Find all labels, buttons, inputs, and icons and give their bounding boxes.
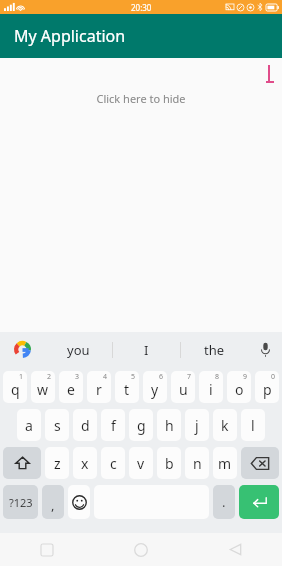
staticText: w [37, 380, 49, 399]
staticText: x [81, 454, 89, 473]
staticText: 4 [103, 372, 108, 382]
staticText: h [165, 416, 174, 435]
staticText: n [193, 454, 202, 473]
button[interactable]: s [45, 409, 69, 441]
staticText: v [137, 454, 145, 473]
staticText: you [67, 341, 90, 359]
staticText: ?123 [9, 495, 33, 510]
staticText: 3 [75, 372, 80, 382]
button[interactable]: g [129, 409, 153, 441]
button[interactable]: j [185, 409, 209, 441]
staticText: 0 [271, 372, 276, 382]
staticText: o [235, 380, 244, 399]
staticText: q [11, 380, 20, 399]
button[interactable]: x [73, 447, 97, 479]
staticText: 9 [243, 372, 248, 382]
button[interactable]: p [255, 371, 279, 403]
staticText: , [51, 496, 55, 514]
staticText: s [54, 416, 61, 435]
button[interactable]: b [157, 447, 181, 479]
button[interactable]: z [45, 447, 69, 479]
button[interactable]: c [101, 447, 125, 479]
staticText: 8 [215, 372, 220, 382]
staticText: My Application [14, 25, 126, 47]
staticText: 6 [159, 372, 164, 382]
button[interactable]: the [181, 332, 248, 367]
staticText: z [54, 454, 61, 473]
button[interactable]: l [241, 409, 265, 441]
staticText: k [221, 416, 229, 435]
button[interactable]: Click here to hide [96, 91, 186, 106]
staticText: e [67, 380, 75, 399]
staticText: 5 [131, 372, 136, 382]
button[interactable]: i [199, 371, 223, 403]
button[interactable]: , [42, 485, 64, 519]
staticText: p [263, 380, 272, 399]
staticText: d [81, 416, 90, 435]
staticText: f [111, 416, 116, 435]
staticText: 7 [187, 372, 192, 382]
staticText: a [25, 416, 33, 435]
staticText: j [195, 416, 199, 435]
button[interactable]: Shift [3, 447, 41, 479]
button[interactable]: Google [0, 332, 44, 367]
button[interactable]: a [17, 409, 41, 441]
button[interactable]: h [157, 409, 181, 441]
button[interactable]: n [185, 447, 209, 479]
button[interactable]: q [3, 371, 27, 403]
staticText: b [165, 454, 174, 473]
button[interactable]: Enter [239, 485, 279, 519]
staticText: c [110, 454, 117, 473]
button[interactable]: e [59, 371, 83, 403]
button[interactable]: Emoji [68, 485, 90, 519]
button[interactable]: r [87, 371, 111, 403]
button[interactable]: Home [94, 533, 188, 566]
staticText: y [151, 380, 159, 399]
staticText: u [179, 380, 188, 399]
staticText: g [137, 416, 146, 435]
button[interactable]: w [31, 371, 55, 403]
button[interactable]: Backspace [241, 447, 279, 479]
button[interactable]: you [44, 332, 112, 367]
staticText: r [96, 380, 102, 399]
button[interactable]: d [73, 409, 97, 441]
staticText: 2 [47, 372, 52, 382]
button[interactable]: o [227, 371, 251, 403]
button[interactable]: I [113, 332, 180, 367]
button[interactable]: m [213, 447, 237, 479]
button[interactable]: t [115, 371, 139, 403]
staticText: the [204, 341, 225, 359]
button[interactable]: k [213, 409, 237, 441]
button[interactable]: v [129, 447, 153, 479]
staticText: m [218, 454, 232, 473]
button[interactable]: . [213, 485, 235, 519]
staticText: i [209, 380, 213, 399]
button[interactable]: ?123 [3, 485, 38, 519]
staticText: t [124, 380, 130, 399]
staticText: I [144, 341, 149, 359]
staticText: 20:30 [131, 2, 152, 13]
button[interactable]: Voice input [248, 332, 282, 367]
button[interactable]: u [171, 371, 195, 403]
button[interactable]: f [101, 409, 125, 441]
staticText: . [222, 493, 226, 511]
button[interactable]: y [143, 371, 167, 403]
staticText: l [251, 416, 255, 435]
staticText: 1 [19, 372, 24, 382]
